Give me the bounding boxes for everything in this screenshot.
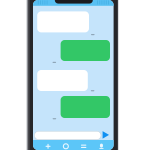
button[interactable]: Add: [39, 141, 57, 150]
button[interactable]: [34, 131, 101, 140]
button[interactable]: Send: [103, 131, 109, 139]
button[interactable]: Menu: [75, 141, 93, 150]
button[interactable]: Microphone: [93, 141, 110, 150]
button[interactable]: Camera: [57, 141, 75, 150]
